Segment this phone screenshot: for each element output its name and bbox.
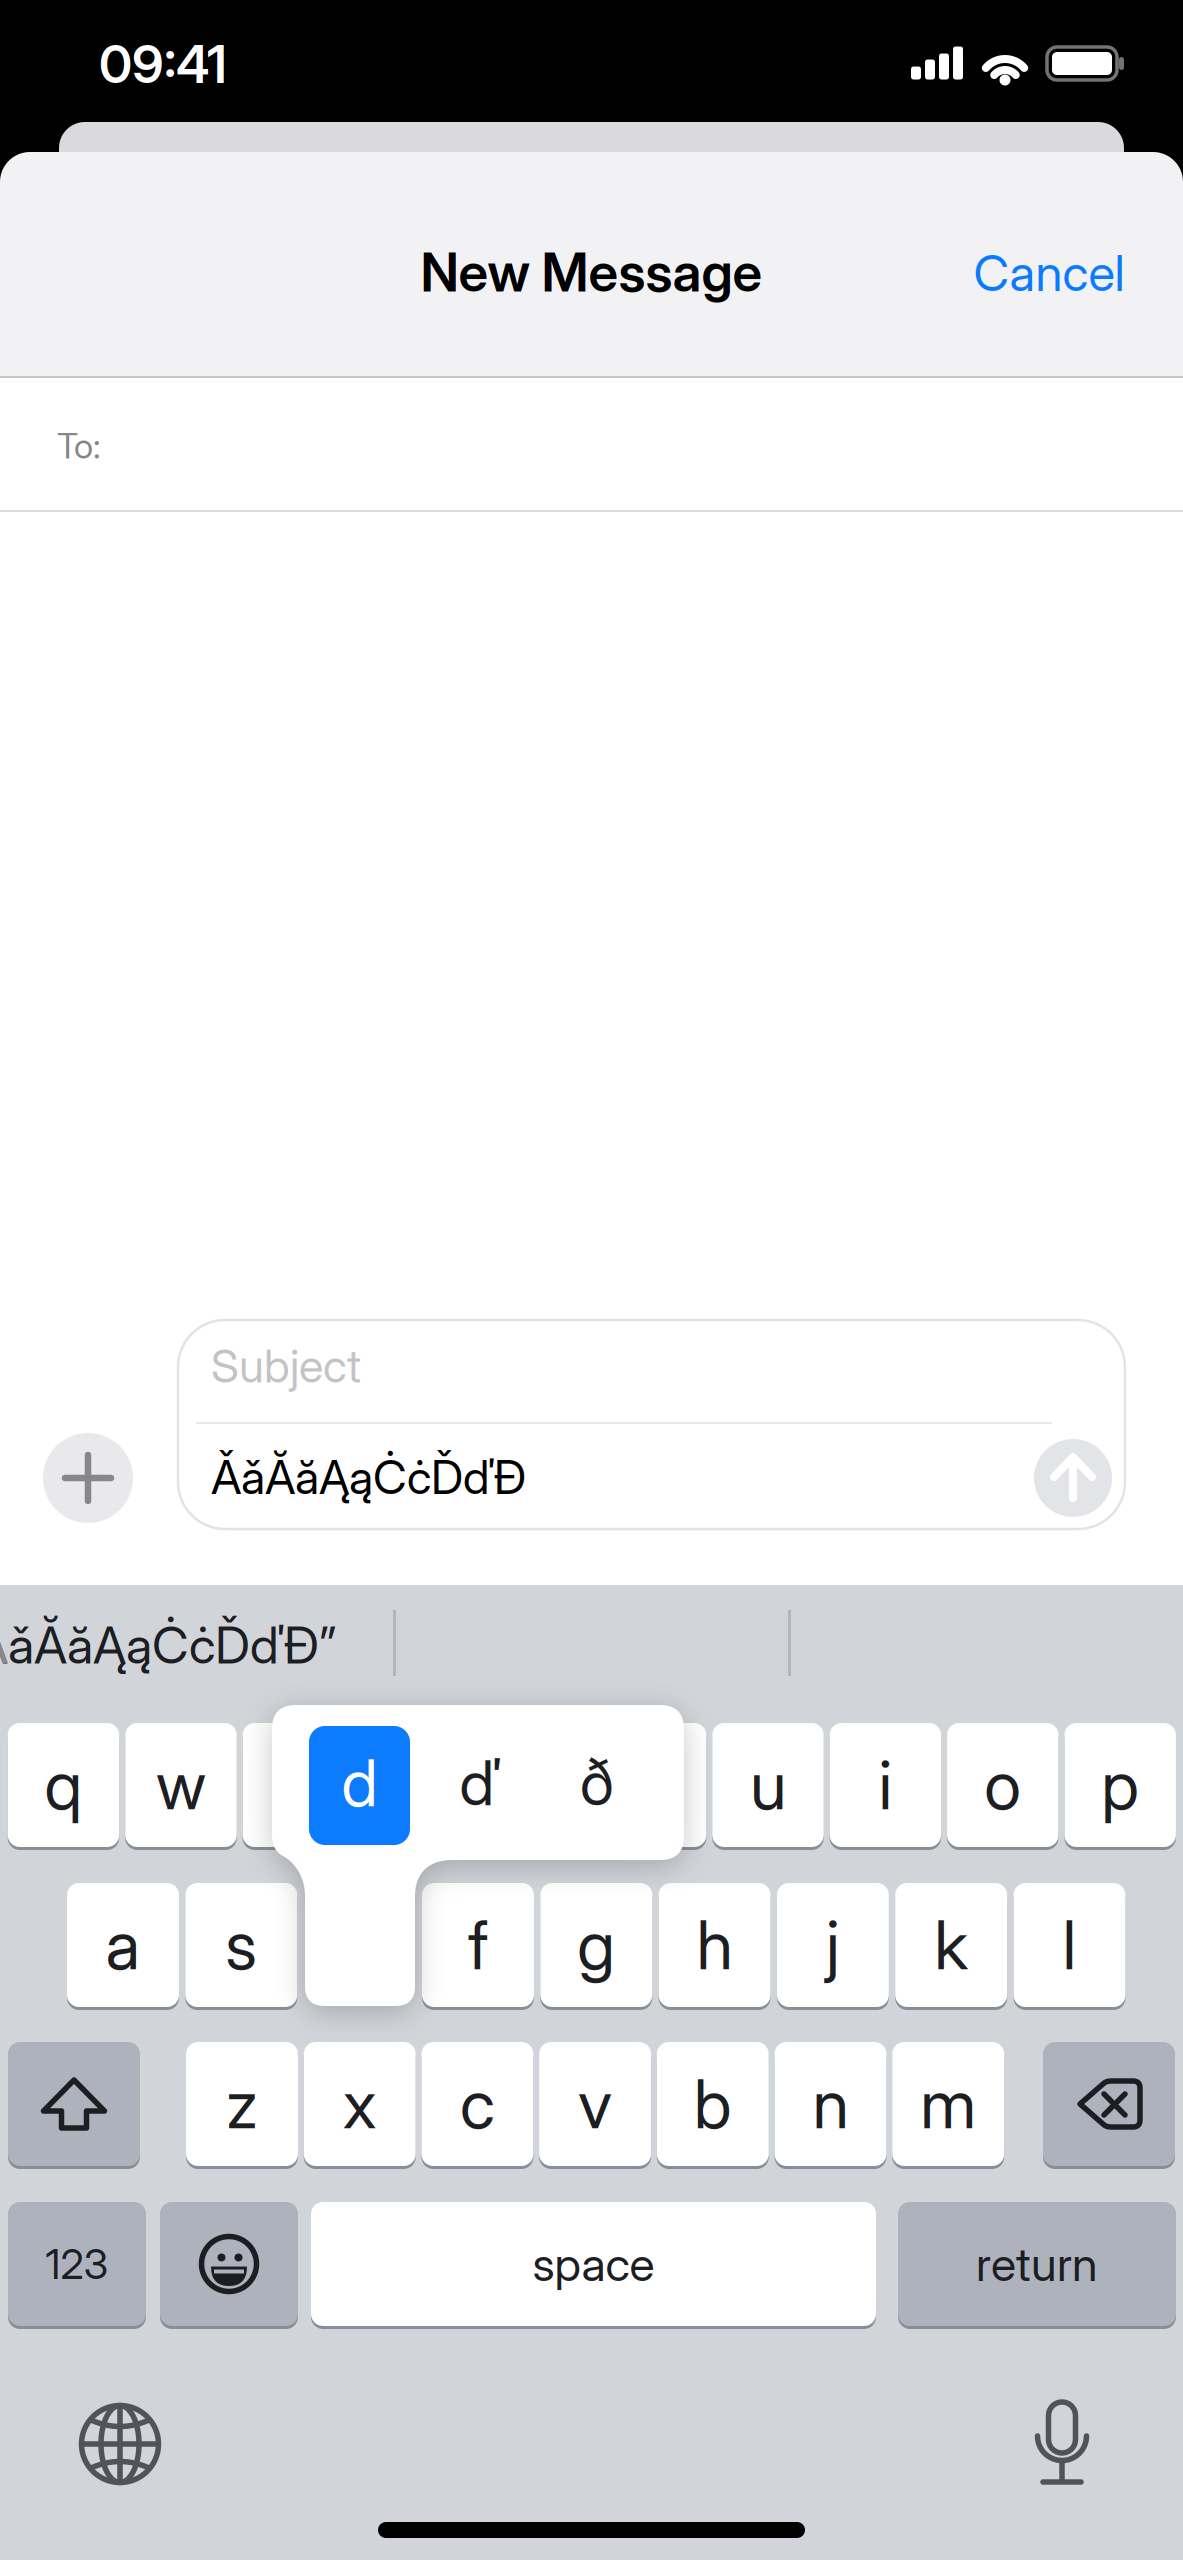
button[interactable]: q (8, 1721, 119, 1849)
button[interactable] (8, 2040, 140, 2168)
staticText: e (280, 1746, 316, 1824)
staticText: m (920, 2065, 976, 2143)
button[interactable]: n (774, 2040, 886, 2168)
button[interactable]: 123 (8, 2200, 146, 2328)
staticText: i (878, 1746, 892, 1824)
button[interactable] (160, 2200, 298, 2328)
button[interactable] (1043, 2040, 1175, 2168)
button[interactable] (1034, 1439, 1112, 1517)
button[interactable]: y (595, 1721, 706, 1849)
button[interactable]: f (422, 1881, 534, 2009)
staticText: p (1101, 1746, 1139, 1824)
staticText: Subject (211, 1339, 361, 1393)
button[interactable]: i (830, 1721, 941, 1849)
staticText: u (750, 1746, 786, 1824)
staticText: h (697, 1906, 733, 1984)
button[interactable]: m (892, 2040, 1004, 2168)
button[interactable]: space (311, 2200, 876, 2328)
button[interactable]: o (947, 1721, 1058, 1849)
staticText: l (1062, 1906, 1076, 1984)
button[interactable]: x (304, 2040, 416, 2168)
staticText: s (225, 1906, 257, 1984)
button[interactable]: a (67, 1881, 179, 2009)
staticText: New Message (420, 240, 762, 303)
button[interactable]: h (659, 1881, 771, 2009)
button[interactable]: g (540, 1881, 652, 2009)
staticText: k (934, 1906, 968, 1984)
staticText: ǍǎĂăĄąĊċĎďĐ” (0, 1615, 336, 1675)
button[interactable]: return (898, 2200, 1176, 2328)
button[interactable]: r (360, 1721, 472, 1849)
staticText: w (156, 1746, 206, 1824)
staticText: r (405, 1746, 426, 1824)
staticText: ǍǎĂăĄąĊċĎďĐ (211, 1449, 526, 1505)
staticText: To: (57, 426, 101, 466)
button[interactable]: z (186, 2040, 298, 2168)
button[interactable] (43, 1433, 133, 1523)
staticText: n (812, 2065, 848, 2143)
staticText: x (343, 2065, 377, 2143)
button[interactable]: Cancel (973, 244, 1124, 302)
staticText: q (44, 1746, 82, 1824)
button[interactable]: p (1064, 1721, 1176, 1849)
button[interactable] (1012, 2393, 1112, 2493)
button[interactable] (396, 1576, 786, 1714)
staticText: c (460, 2065, 495, 2143)
button[interactable] (70, 2394, 170, 2494)
button[interactable]: ǍǎĂăĄąĊċĎďĐ” (0, 1576, 475, 1714)
staticText: 123 (45, 2240, 108, 2288)
staticText: return (976, 2236, 1098, 2292)
staticText: ď (459, 1747, 500, 1819)
button[interactable]: e (243, 1721, 354, 1849)
button[interactable] (792, 1576, 1182, 1714)
button[interactable]: To: (57, 381, 1183, 511)
button[interactable]: k (895, 1881, 1007, 2009)
staticText: v (578, 2065, 612, 2143)
button[interactable]: c (421, 2040, 533, 2168)
button[interactable]: t (477, 1721, 589, 1849)
button[interactable]: u (712, 1721, 824, 1849)
staticText: o (984, 1746, 1021, 1824)
staticText: f (468, 1906, 488, 1984)
button[interactable]: s (185, 1881, 297, 2009)
staticText: 09:41 (99, 33, 227, 95)
staticText: j (826, 1906, 840, 1984)
staticText: z (226, 2065, 258, 2143)
staticText: b (694, 2065, 732, 2143)
staticText: Ǎ (0, 1615, 8, 1675)
staticText: space (532, 2236, 654, 2292)
button[interactable]: w (125, 1721, 237, 1849)
staticText: ð (580, 1747, 614, 1819)
button[interactable]: v (539, 2040, 651, 2168)
staticText: a (105, 1906, 140, 1984)
button[interactable]: b (657, 2040, 769, 2168)
staticText: Cancel (973, 244, 1124, 302)
button[interactable]: j (777, 1881, 889, 2009)
button[interactable]: l (1013, 1881, 1125, 2009)
staticText: g (577, 1906, 615, 1984)
staticText: d (341, 1745, 377, 1821)
